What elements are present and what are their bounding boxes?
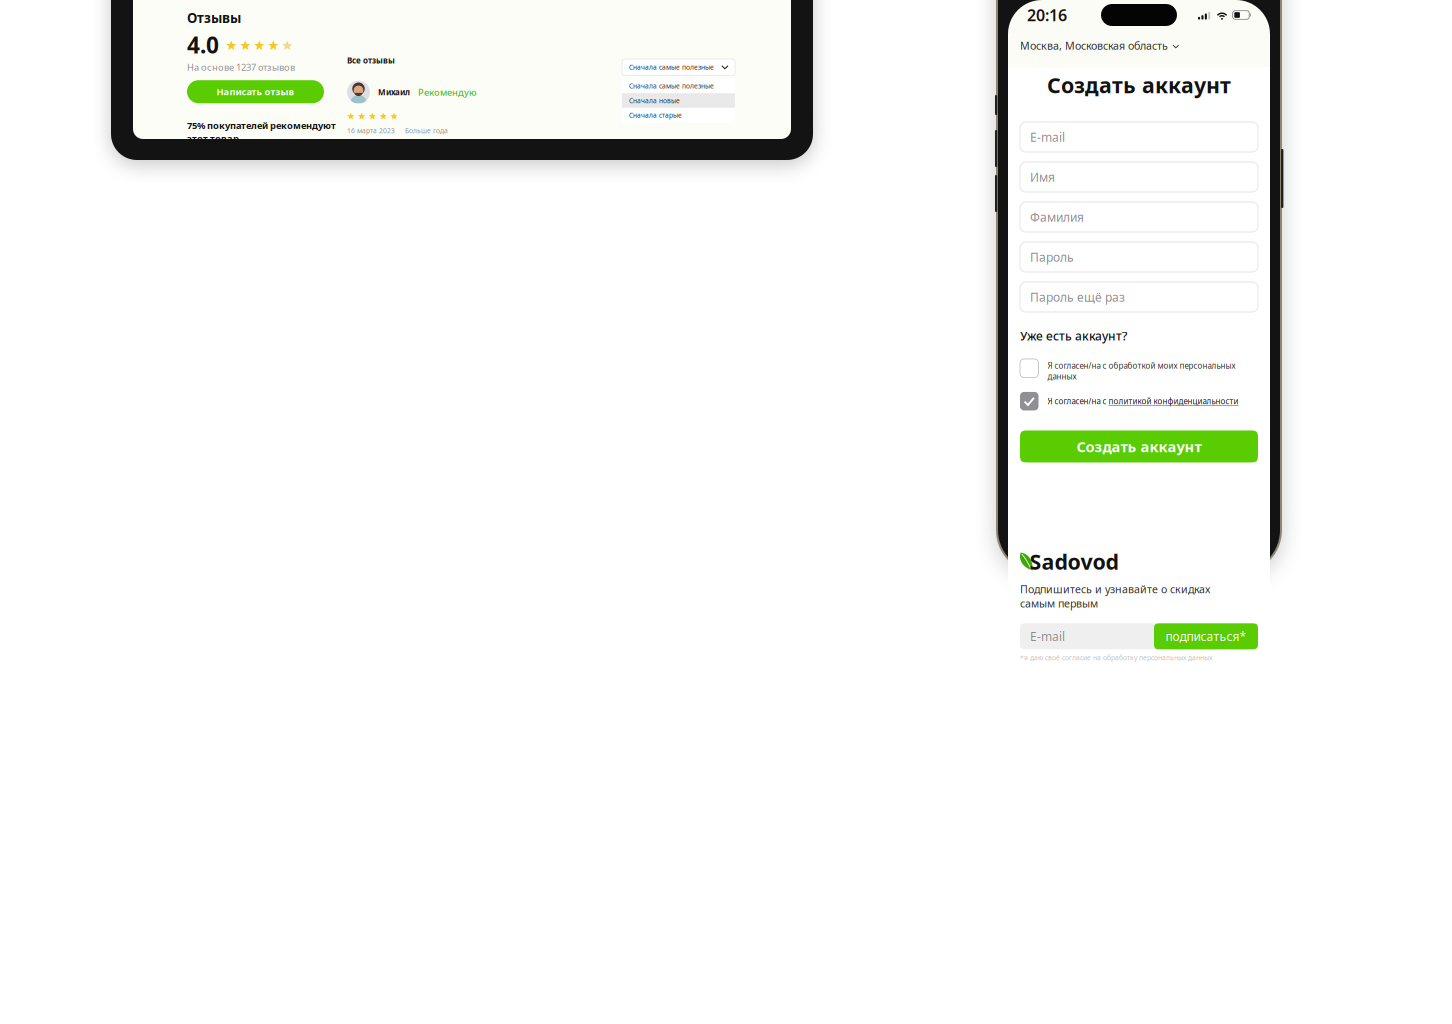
staticText: этот товар	[187, 132, 239, 144]
staticText: Написать отзыв	[216, 85, 294, 98]
staticText: Сначала старые	[629, 111, 682, 120]
staticText: Имя	[1030, 169, 1055, 185]
button[interactable]: Уже есть аккаунт?	[1020, 328, 1127, 344]
staticText: E-mail	[1030, 628, 1065, 644]
staticText: Больше года	[405, 126, 448, 135]
staticText: Фамилия	[1030, 209, 1084, 225]
staticText: Сначала самые полезные	[629, 81, 714, 90]
staticText: Сначала новые	[629, 96, 680, 105]
staticText: Рекомендую	[418, 86, 477, 98]
button[interactable]: E-mail	[1020, 623, 1154, 649]
button[interactable]: Москва, Московская область	[1008, 30, 1270, 61]
staticText: 75% покупателей рекомендуют	[187, 119, 336, 132]
staticText: Sadovod	[1029, 547, 1118, 576]
staticText: Подпишитесь и узнавайте о скидках самым …	[1020, 582, 1210, 610]
button[interactable]: Сначала самые полезные	[622, 78, 735, 93]
button[interactable]: Я согласен/на с политикой конфиденциальн…	[1020, 392, 1258, 410]
staticText: E-mail	[1030, 129, 1065, 145]
staticText: Михаил	[378, 87, 410, 97]
staticText: Уже есть аккаунт?	[1020, 328, 1127, 344]
button[interactable]: Сначала старые	[622, 108, 735, 123]
staticText: 16 марта 2023	[347, 126, 395, 135]
staticText: Создать аккаунт	[1076, 437, 1201, 456]
staticText: 20:16	[1027, 4, 1067, 26]
button[interactable]: Имя	[1020, 162, 1258, 192]
staticText: подписаться*	[1165, 628, 1246, 644]
staticText: Все отзывы	[347, 55, 395, 66]
button[interactable]: подписаться*	[1154, 623, 1258, 649]
button[interactable]: Сначала самые полезные	[622, 59, 735, 75]
button[interactable]: E-mail	[1020, 122, 1258, 152]
button[interactable]: Написать отзыв	[187, 80, 324, 103]
button[interactable]: Фамилия	[1020, 202, 1258, 232]
staticText: Я согласен/на с политикой конфиденциальн…	[1047, 396, 1238, 406]
button[interactable]: Создать аккаунт	[1020, 430, 1258, 462]
staticText: Сначала самые полезные	[629, 63, 714, 72]
staticText: Москва, Московская область	[1020, 38, 1168, 53]
staticText: Создать аккаунт	[1047, 71, 1231, 99]
staticText: На основе 1237 отзывов	[187, 61, 295, 73]
button[interactable]: Я согласен/на с обработкой моих персонал…	[1020, 359, 1258, 377]
staticText: 4.0	[187, 30, 219, 60]
staticText: Пароль ещё раз	[1030, 289, 1125, 305]
staticText: Отзывы	[187, 9, 241, 27]
button[interactable]: Сначала новые	[622, 93, 735, 108]
button[interactable]: Пароль	[1020, 242, 1258, 272]
staticText: Я согласен/на с обработкой моих персонал…	[1047, 360, 1235, 382]
staticText: *я даю своё согласие на обработку персон…	[1020, 653, 1212, 662]
button[interactable]: Пароль ещё раз	[1020, 282, 1258, 312]
staticText: Пароль	[1030, 249, 1074, 265]
